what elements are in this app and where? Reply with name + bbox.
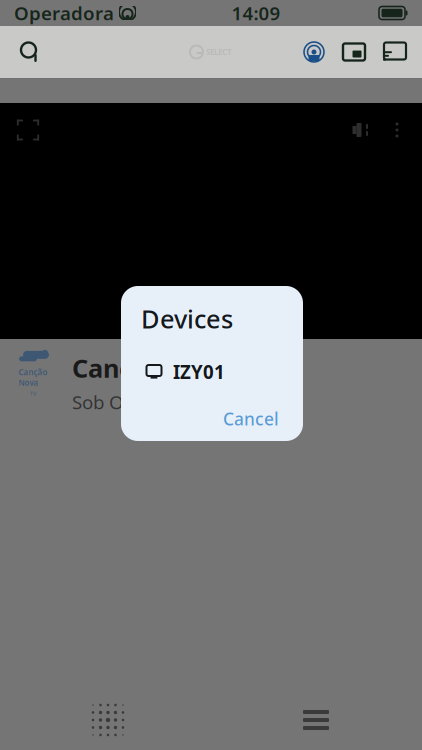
button[interactable]: More options xyxy=(380,113,414,147)
button[interactable]: Keypad xyxy=(86,698,130,742)
staticText: TV xyxy=(30,390,36,397)
button[interactable]: Full screen xyxy=(8,113,48,147)
button[interactable]: Menu xyxy=(294,698,338,742)
button[interactable]: Live broadcast xyxy=(294,30,334,74)
staticText: Cancel xyxy=(223,407,279,430)
staticText: Canção Nova xyxy=(18,367,47,388)
button[interactable]: Picture in picture xyxy=(334,30,374,74)
button[interactable]: Cast xyxy=(374,30,414,74)
staticText: SELECT xyxy=(206,47,232,57)
button[interactable]: IZY01 xyxy=(121,351,303,392)
staticText: IZY01 xyxy=(173,359,225,384)
staticText: 14:09 xyxy=(231,1,280,25)
staticText: Sob O Manto de Maria xyxy=(72,390,268,414)
button[interactable]: Volume xyxy=(342,113,380,147)
staticText: Canção Nova xyxy=(72,351,235,385)
button[interactable]: Cancel xyxy=(209,400,293,437)
staticText: Devices xyxy=(141,302,233,335)
staticText: Operadora xyxy=(14,1,114,25)
button[interactable]: Search xyxy=(8,30,52,74)
